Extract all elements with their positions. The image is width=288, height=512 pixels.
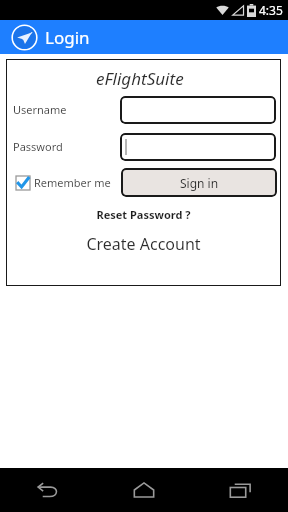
staticText: Sign in [180, 175, 219, 191]
other: App icon [11, 24, 38, 51]
button[interactable]: Back [25, 468, 71, 512]
staticText: 4:35 [259, 2, 283, 18]
button[interactable]: Reset Password ? [6, 207, 281, 222]
button[interactable]: Remember me [6, 173, 113, 192]
button[interactable] [120, 96, 276, 124]
button[interactable]: Home [121, 468, 167, 512]
staticText: Username [13, 102, 67, 117]
staticText: Login [45, 26, 90, 49]
staticText: Remember me [34, 175, 111, 190]
button[interactable]: Sign in [121, 168, 277, 197]
button[interactable]: Recent apps [217, 468, 263, 512]
staticText: Reset Password ? [96, 207, 191, 222]
staticText: eFlightSuite [96, 67, 184, 90]
staticText: Password [13, 139, 63, 154]
button[interactable]: Create Account [6, 233, 281, 255]
staticText: Create Account [86, 233, 201, 255]
button[interactable] [120, 133, 276, 161]
